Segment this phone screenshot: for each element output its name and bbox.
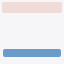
button[interactable]: [0, 49, 64, 57]
